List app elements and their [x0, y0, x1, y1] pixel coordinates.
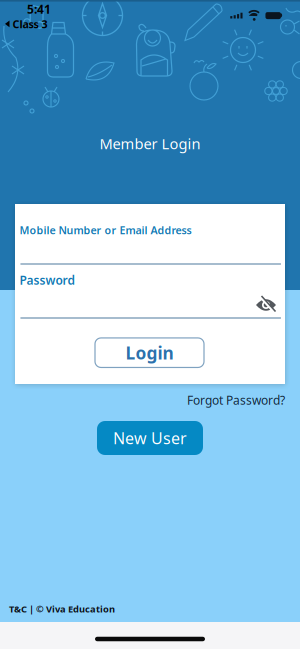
- button[interactable]: New User: [97, 421, 203, 455]
- staticText: Class 3: [12, 17, 47, 31]
- staticText: Member Login: [99, 134, 200, 153]
- button[interactable]: Forgot Password?: [187, 392, 285, 408]
- button[interactable]: Login: [95, 338, 204, 367]
- staticText: Mobile Number or Email Address: [19, 223, 191, 237]
- staticText: T&C | © Viva Education: [9, 603, 115, 615]
- staticText: 5:41: [27, 1, 51, 17]
- staticText: Login: [125, 341, 173, 364]
- staticText: Forgot Password?: [187, 392, 285, 408]
- button[interactable]: Show password: [256, 298, 276, 312]
- button[interactable]: Back to Class 3: [5, 17, 47, 31]
- staticText: New User: [113, 427, 187, 449]
- staticText: Password: [19, 272, 75, 288]
